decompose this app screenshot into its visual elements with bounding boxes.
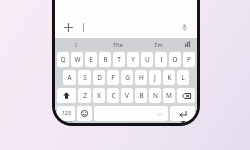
button[interactable]: Emoji [77,106,92,121]
button[interactable]: T [113,52,125,67]
button[interactable]: Q [57,52,69,67]
button[interactable]: nn [94,106,168,121]
staticText: K [167,73,172,82]
button[interactable]: Z [78,88,91,103]
button[interactable]: Add attachment [61,20,76,35]
button[interactable]: Change keyboard language [62,121,75,123]
staticText: G [125,73,130,82]
button[interactable]: A [63,70,76,85]
button[interactable]: Y [127,52,139,67]
staticText: Y [131,55,135,64]
staticText: H [139,73,144,82]
staticText: B [139,91,144,100]
staticText: D [97,73,102,82]
staticText: I [160,55,163,64]
button[interactable]: K [163,70,175,85]
button[interactable]: Keyboard settings [179,38,197,50]
staticText: L [181,73,185,82]
staticText: 123 [62,110,71,117]
staticText: C [111,91,116,100]
button[interactable]: L [177,70,189,85]
staticText: I'm [154,41,163,48]
staticText: E [89,55,93,64]
button[interactable]: O [169,52,181,67]
button[interactable]: G [121,70,133,85]
button[interactable]: V [121,88,133,103]
staticText: F [111,73,115,82]
staticText: M [166,91,172,100]
button[interactable]: M [163,88,175,103]
button[interactable]: N [149,88,161,103]
staticText: N [153,91,158,100]
button[interactable]: Shift [57,88,76,103]
button[interactable]: Return [170,106,195,121]
staticText: The [113,41,123,48]
staticText: T [117,55,121,64]
staticText: I [75,41,77,48]
button[interactable]: U [141,52,153,67]
staticText: W [74,55,81,64]
button[interactable]: The [97,38,138,50]
button[interactable]: Voice input [178,21,191,34]
button[interactable]: I [155,52,167,67]
button[interactable]: W [71,52,83,67]
staticText: U [145,55,150,64]
button[interactable]: X [93,88,105,103]
button[interactable]: S [78,70,91,85]
button[interactable]: 123 [57,106,75,121]
staticText: P [187,55,191,64]
button[interactable]: F [107,70,119,85]
button[interactable]: I [55,38,97,50]
button[interactable]: Backspace [177,88,195,103]
button[interactable]: I'm [138,38,179,50]
button[interactable]: B [135,88,147,103]
staticText: S [83,73,87,82]
staticText: J [154,73,156,82]
staticText: Q [60,55,66,64]
staticText: A [67,73,72,82]
button[interactable]: Dictate [177,121,190,123]
staticText: V [125,91,129,100]
button[interactable]: E [85,52,97,67]
staticText: X [97,91,101,100]
button[interactable]: D [93,70,105,85]
button[interactable]: R [99,52,111,67]
staticText: nn [157,111,163,117]
button[interactable]: J [149,70,161,85]
button[interactable]: P [183,52,195,67]
button[interactable]: H [135,70,147,85]
staticText: O [172,55,178,64]
button[interactable]: C [107,88,119,103]
staticText: R [103,55,108,64]
staticText: Z [83,91,87,100]
